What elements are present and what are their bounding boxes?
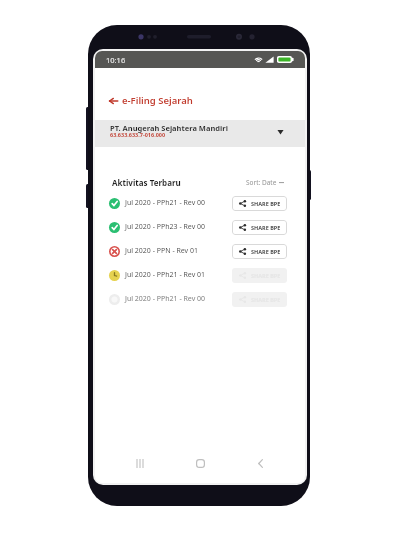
button[interactable]: Back [237,450,283,476]
button[interactable]: Jul 2020 - PPh21 - Rev 00 [95,191,305,215]
staticText: SHARE BPE [251,272,281,279]
staticText: PT. Anugerah Sejahtera Mandiri [110,123,228,133]
other: Back [109,97,118,105]
staticText: Jul 2020 - PPh21 - Rev 00 [125,294,206,304]
button[interactable]: Home [177,450,223,476]
staticText: e-Filing Sejarah [122,94,193,107]
button[interactable]: Jul 2020 - PPh21 - Rev 01 [95,263,305,287]
other: Select company [277,127,284,137]
button[interactable]: Jul 2020 - PPN - Rev 01 [95,239,305,263]
button[interactable]: Jul 2020 - PPh21 - Rev 00 [95,287,305,311]
staticText: SHARE BPE [251,296,281,303]
staticText: SHARE BPE [251,248,281,255]
staticText: SHARE BPE [251,200,281,207]
button[interactable]: Back [95,90,305,111]
button[interactable]: SHARE BPE [232,220,287,235]
staticText: 10:16 [106,55,126,65]
button[interactable]: SHARE BPE [232,292,287,307]
button[interactable]: PT. Anugerah Sejahtera Mandiri [95,120,305,147]
button[interactable]: SHARE BPE [232,196,287,211]
staticText: Sort: Date [246,178,277,187]
staticText: Aktivitas Terbaru [112,177,181,188]
button[interactable]: SHARE BPE [232,268,287,283]
staticText: 63.633.633.7-016.000 [110,131,166,138]
staticText: Jul 2020 - PPN - Rev 01 [125,246,199,256]
button[interactable]: SHARE BPE [232,244,287,259]
staticText: Jul 2020 - PPh21 - Rev 00 [125,198,206,208]
button[interactable]: Recent apps [117,450,163,476]
button[interactable]: Jul 2020 - PPh23 - Rev 00 [95,215,305,239]
staticText: SHARE BPE [251,224,281,231]
staticText: Jul 2020 - PPh23 - Rev 00 [125,222,206,232]
button[interactable]: Sort: Date [246,178,284,187]
staticText: Jul 2020 - PPh21 - Rev 01 [125,270,206,280]
